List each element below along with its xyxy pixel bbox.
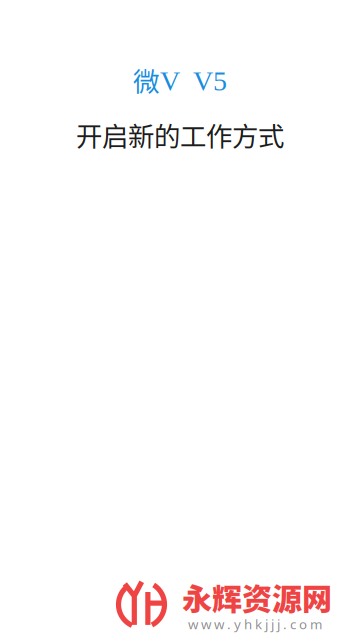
staticText: 永辉资源网 — [182, 575, 332, 618]
staticText: w w w . y h k j j j . c o m — [188, 615, 322, 633]
staticText: 开启新的工作方式 — [76, 116, 284, 154]
staticText: 微V V5 — [133, 61, 227, 99]
